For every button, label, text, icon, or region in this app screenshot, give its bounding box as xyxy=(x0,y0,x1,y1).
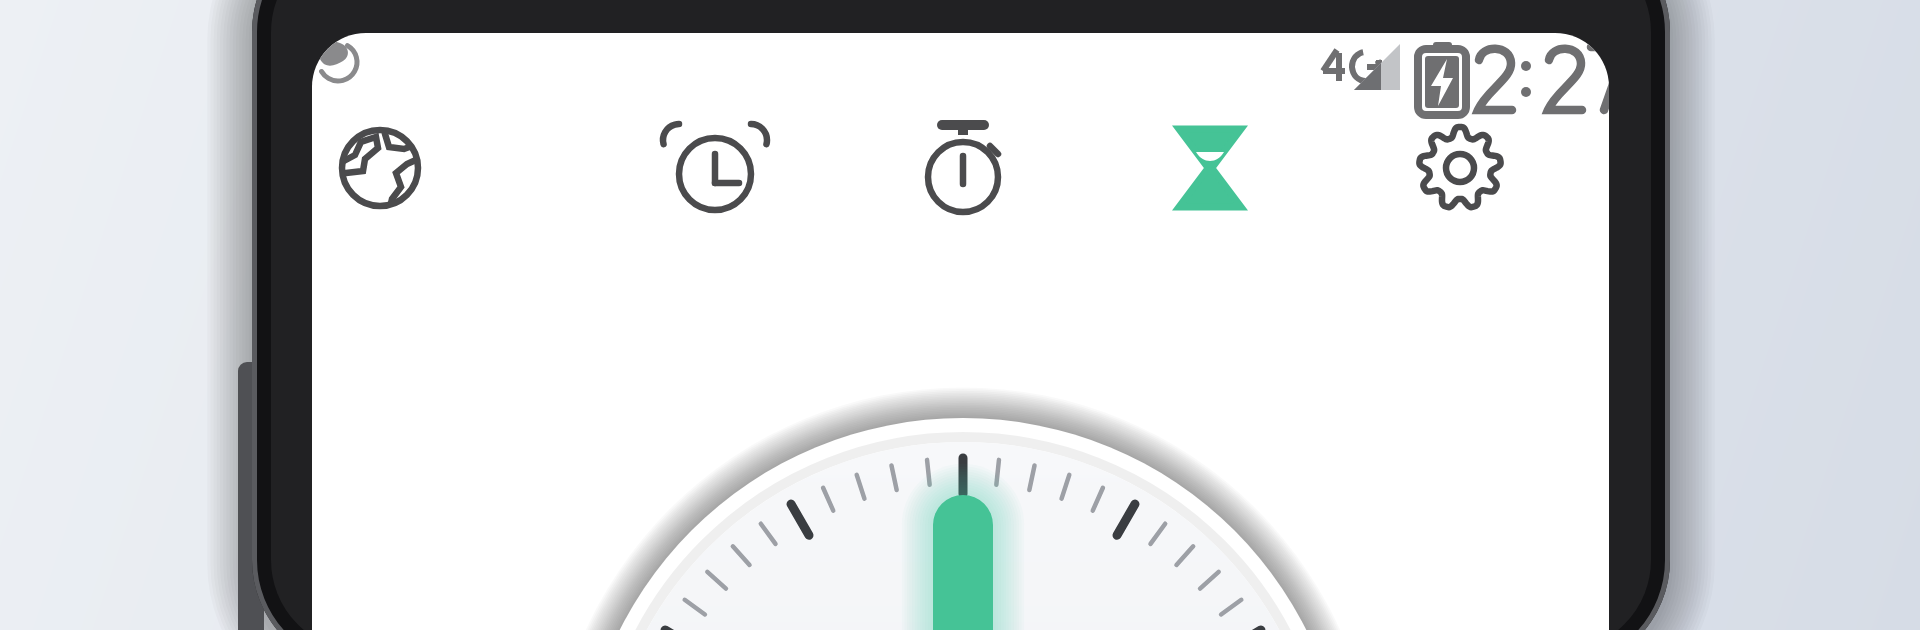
button[interactable]: Alarm xyxy=(653,106,777,230)
button[interactable]: Stopwatch xyxy=(901,106,1025,230)
button[interactable]: Timer xyxy=(1148,106,1272,230)
button[interactable]: Timer dial xyxy=(603,442,1323,630)
button[interactable]: Settings xyxy=(1398,106,1522,230)
button[interactable]: World clock xyxy=(318,106,442,230)
